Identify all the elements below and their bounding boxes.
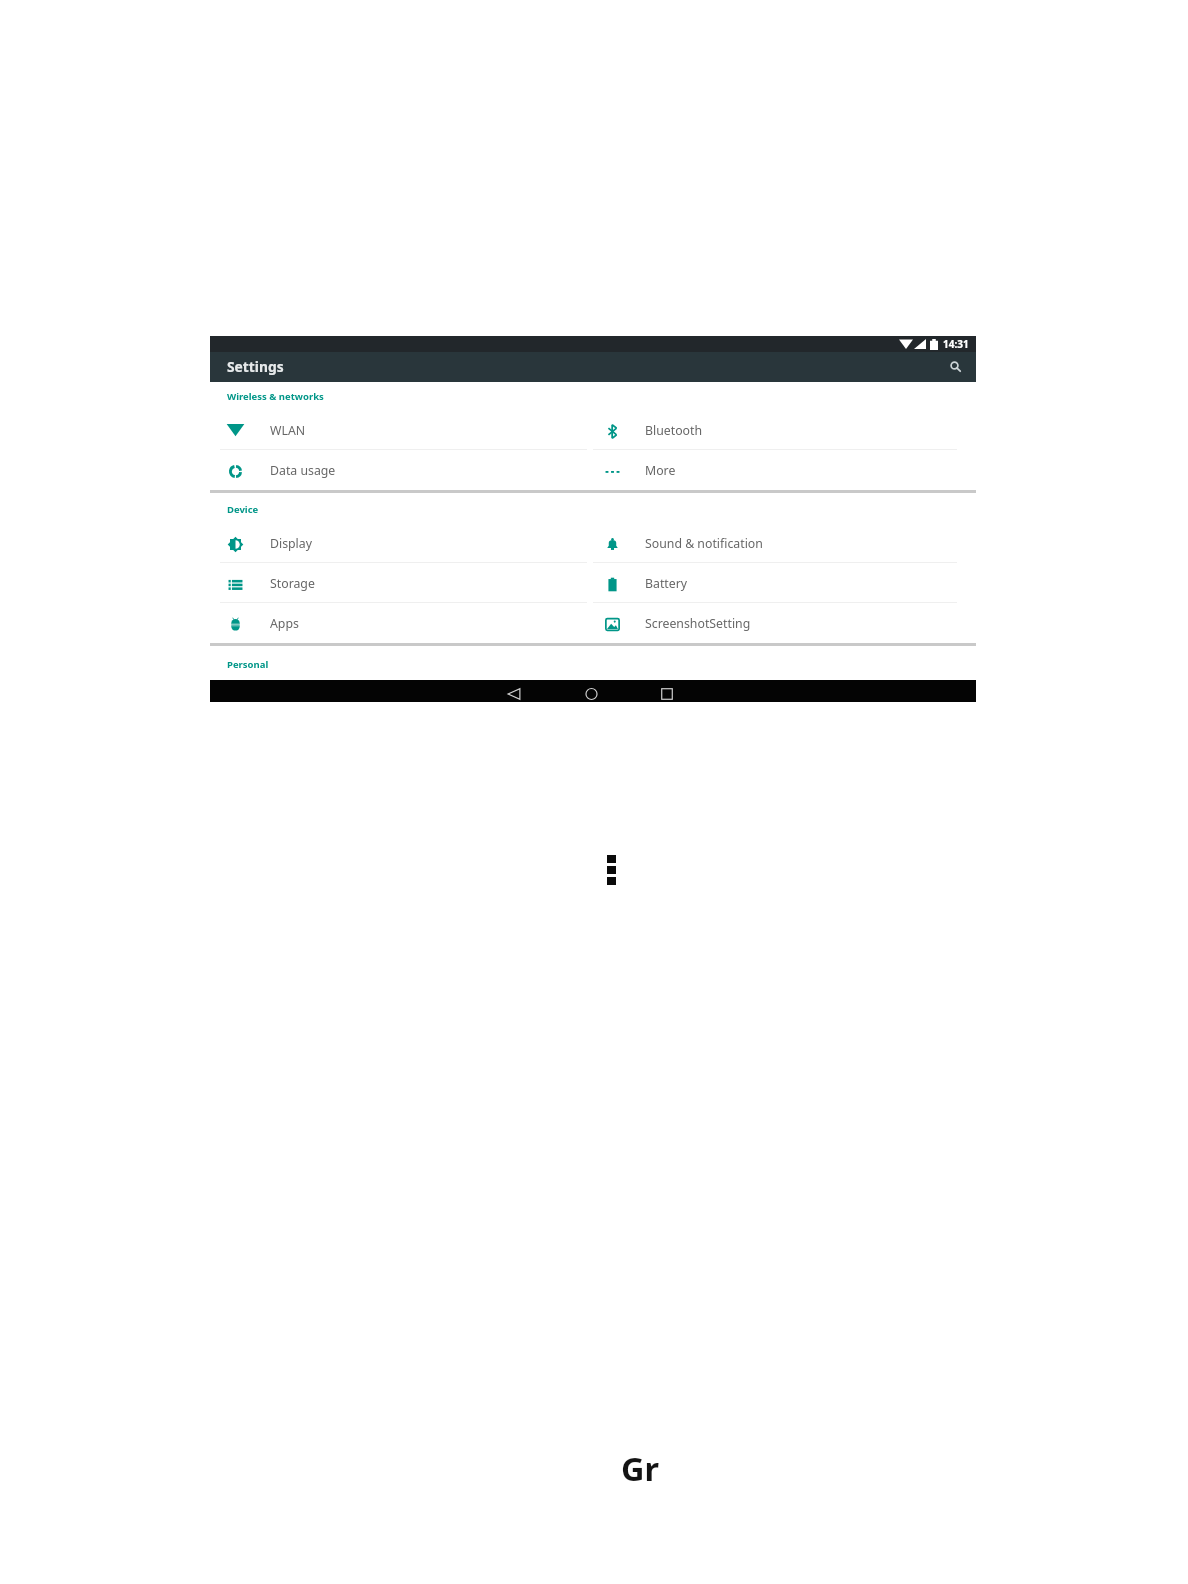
staticText: Settings	[227, 357, 284, 376]
button[interactable]: Data usage	[210, 450, 593, 490]
button[interactable]: Back	[498, 685, 530, 702]
button[interactable]: More	[593, 450, 976, 490]
button[interactable]: Display	[210, 523, 593, 563]
staticText: 14:31	[943, 337, 969, 351]
button[interactable]: Apps	[210, 603, 593, 643]
button[interactable]: Recents	[651, 685, 683, 702]
staticText: Wireless & networks	[227, 390, 324, 403]
button[interactable]: Sound & notification	[593, 523, 976, 563]
button[interactable]: Battery	[593, 563, 976, 603]
staticText: Storage	[270, 575, 315, 592]
staticText: Bluetooth	[645, 422, 703, 439]
staticText: Personal	[227, 658, 269, 671]
staticText: Data usage	[270, 462, 336, 479]
button[interactable]: ScreenshotSetting	[593, 603, 976, 643]
button[interactable]: Bluetooth	[593, 410, 976, 450]
staticText: More	[645, 462, 676, 479]
staticText: Sound & notification	[645, 535, 763, 552]
button[interactable]: WLAN	[210, 410, 593, 450]
staticText: Battery	[645, 575, 688, 592]
staticText: ScreenshotSetting	[645, 615, 751, 632]
staticText: Gr	[621, 1446, 660, 1490]
button[interactable]: Search	[944, 355, 966, 377]
staticText: Display	[270, 535, 312, 552]
button[interactable]: Home	[575, 685, 607, 702]
staticText: Apps	[270, 615, 299, 632]
button[interactable]: Storage	[210, 563, 593, 603]
staticText: Device	[227, 503, 259, 516]
staticText: WLAN	[270, 422, 306, 439]
